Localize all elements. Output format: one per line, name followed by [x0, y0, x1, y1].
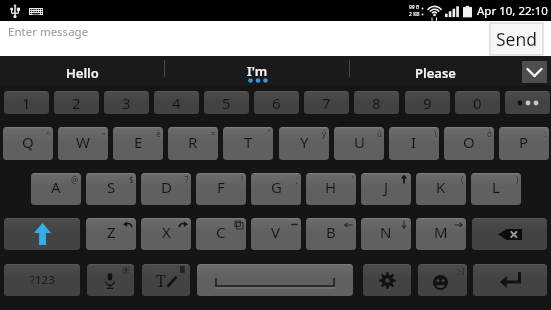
button[interactable]: R: [168, 127, 218, 160]
staticText: N: [380, 222, 392, 242]
button[interactable]: Please: [350, 56, 520, 85]
staticText: Y: [300, 132, 309, 152]
button[interactable]: Enter: [473, 264, 547, 296]
button[interactable]: Settings: [363, 264, 411, 296]
staticText: U: [354, 132, 365, 152]
staticText: ?: [185, 174, 189, 185]
button[interactable]: S: [86, 173, 136, 205]
staticText: E: [134, 132, 143, 152]
staticText: =: [211, 128, 216, 139]
staticText: Please: [415, 64, 456, 82]
button[interactable]: Backspace: [472, 218, 547, 250]
button[interactable]: C: [196, 218, 246, 250]
button[interactable]: A: [31, 173, 81, 205]
staticText: ;-): [457, 265, 465, 276]
staticText: ?123: [30, 272, 55, 288]
button[interactable]: Space: [197, 264, 353, 296]
staticText: Q: [22, 132, 34, 152]
staticText: $: [129, 174, 134, 185]
button[interactable]: Shift: [4, 218, 80, 250]
button[interactable]: Z: [86, 218, 136, 250]
button[interactable]: G: [251, 173, 301, 205]
staticText: H: [325, 177, 337, 197]
staticText: B: [326, 222, 336, 242]
button[interactable]: Emoji: [418, 264, 467, 296]
button[interactable]: J: [361, 173, 411, 205]
staticText: ý: [322, 128, 327, 139]
staticText: S: [107, 177, 116, 197]
staticText: Z: [107, 222, 116, 242]
staticText: A: [51, 177, 61, 197]
staticText: 2: [72, 93, 81, 113]
staticText: L: [492, 177, 500, 197]
button[interactable]: 4: [154, 91, 199, 114]
staticText: @: [71, 174, 79, 185]
staticText: F: [217, 177, 225, 197]
button[interactable]: U: [334, 127, 384, 160]
button[interactable]: W: [58, 127, 108, 160]
button[interactable]: K: [416, 173, 466, 205]
staticText: 4: [172, 93, 181, 113]
staticText: è: [156, 128, 161, 139]
button[interactable]: X: [141, 218, 191, 250]
button[interactable]: N: [361, 218, 411, 250]
button[interactable]: Hello: [0, 56, 165, 85]
button[interactable]: ?123: [4, 264, 80, 296]
staticText: ;: [296, 174, 299, 185]
button[interactable]: 0: [455, 91, 500, 114]
button[interactable]: P: [499, 127, 549, 160]
button[interactable]: Expand suggestions: [522, 61, 547, 83]
staticText: (: [461, 174, 464, 185]
button[interactable]: M: [416, 218, 466, 250]
button[interactable]: F: [196, 173, 246, 205]
button[interactable]: 1: [4, 91, 49, 114]
staticText: D: [161, 177, 172, 197]
button[interactable]: H: [306, 173, 356, 205]
button[interactable]: More options: [505, 91, 550, 114]
staticText: ~: [101, 128, 106, 139]
staticText: W: [76, 132, 90, 152]
button[interactable]: 7: [304, 91, 349, 114]
staticText: !: [241, 174, 244, 185]
button[interactable]: 6: [254, 91, 299, 114]
staticText: ò: [487, 128, 492, 139]
button[interactable]: 9: [405, 91, 450, 114]
button[interactable]: Send: [490, 23, 543, 55]
button[interactable]: V: [251, 218, 301, 250]
staticText: 1: [22, 93, 31, 113]
staticText: 9: [423, 93, 432, 113]
button[interactable]: I: [389, 127, 439, 160]
staticText: 8: [372, 93, 381, 113]
staticText: G: [271, 177, 282, 197]
staticText: T: [244, 132, 253, 152]
button[interactable]: Q: [3, 127, 53, 160]
button[interactable]: 5: [204, 91, 249, 114]
staticText: Hello: [66, 64, 99, 82]
button[interactable]: Voice input: [87, 264, 134, 296]
staticText: P: [519, 132, 529, 152]
staticText: J: [384, 177, 389, 197]
staticText: R: [188, 132, 198, 152]
button[interactable]: T: [223, 127, 273, 160]
staticText: 6: [272, 93, 281, 113]
button[interactable]: O: [444, 127, 494, 160]
staticText: Enter message: [8, 24, 89, 40]
button[interactable]: 8: [354, 91, 399, 114]
button[interactable]: Handwriting input: [142, 264, 190, 296]
button[interactable]: 3: [104, 91, 149, 114]
button[interactable]: B: [306, 218, 356, 250]
other: USB connected: [10, 4, 20, 18]
button[interactable]: 2: [54, 91, 99, 114]
staticText: T: [156, 270, 166, 292]
button[interactable]: L: [471, 173, 521, 205]
staticText: 0: [473, 93, 482, 113]
button[interactable]: I'm: [165, 56, 350, 85]
staticText: K: [436, 177, 446, 197]
staticText: Send: [496, 27, 538, 51]
staticText: V: [271, 222, 281, 242]
staticText: O: [463, 132, 475, 152]
button[interactable]: Y: [279, 127, 329, 160]
button[interactable]: D: [141, 173, 191, 205]
button[interactable]: E: [113, 127, 163, 160]
staticText: ù: [377, 128, 382, 139]
